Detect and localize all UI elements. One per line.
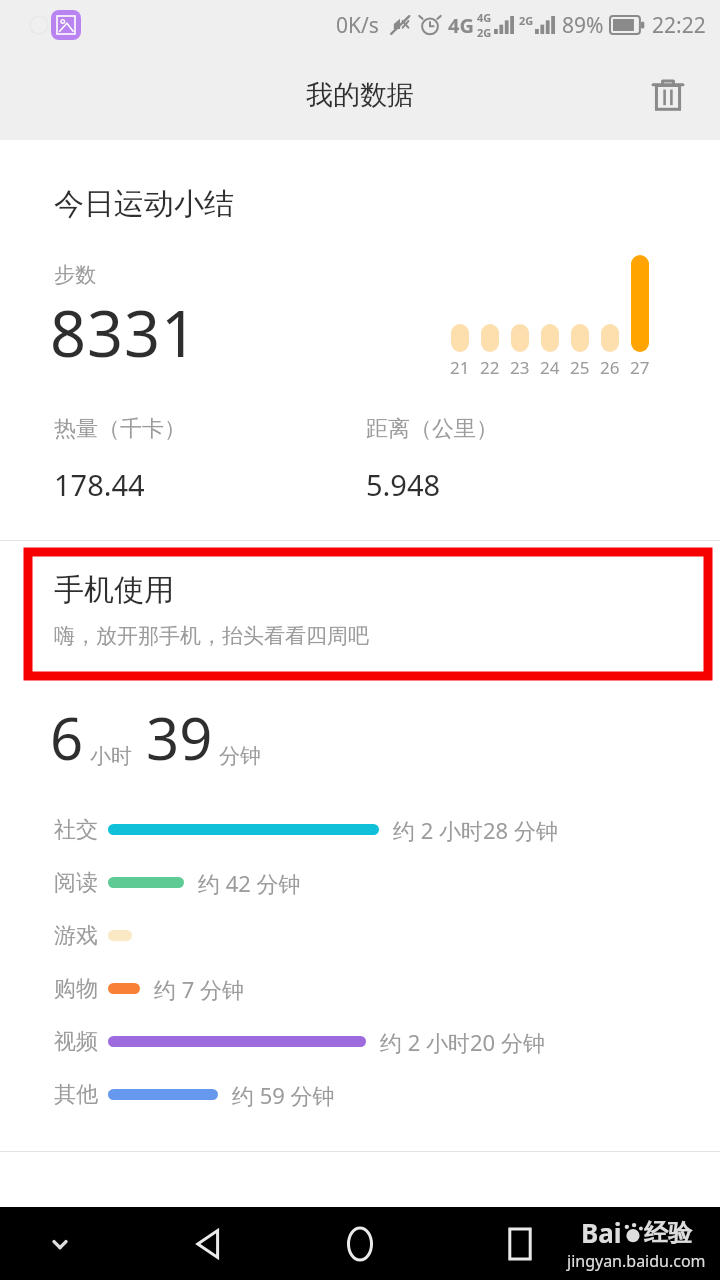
staticText: 嗨，放开那手机，抬头看看四周吧 xyxy=(54,623,369,649)
staticText: 热量（千卡） xyxy=(54,415,186,443)
staticText: 27 xyxy=(630,356,650,379)
button[interactable]: 手机使用 xyxy=(54,571,369,649)
staticText: 24 xyxy=(540,356,560,379)
staticText: 游戏 xyxy=(54,922,98,950)
button[interactable]: Recents xyxy=(490,1214,550,1274)
staticText: 8331 xyxy=(50,290,199,376)
staticText: 阅读 xyxy=(54,869,98,897)
staticText: 2G xyxy=(477,25,492,40)
staticText: 购物 xyxy=(54,975,98,1003)
button[interactable]: 社交 xyxy=(0,803,720,856)
button[interactable]: Hide xyxy=(36,1220,84,1268)
staticText: 约 7 分钟 xyxy=(154,974,245,1004)
button[interactable]: Delete xyxy=(640,67,696,123)
staticText: 社交 xyxy=(54,816,98,844)
staticText: 距离（公里） xyxy=(366,415,498,443)
staticText: 21 xyxy=(450,356,470,379)
staticText: 分钟 xyxy=(219,743,261,769)
button[interactable]: 今日运动小结 xyxy=(0,140,720,540)
staticText: 步数 xyxy=(54,262,96,288)
staticText: Bai xyxy=(581,1215,622,1250)
staticText: 6 xyxy=(50,698,84,777)
staticText: 约 2 小时28 分钟 xyxy=(393,815,558,845)
staticText: 约 59 分钟 xyxy=(232,1080,335,1110)
staticText: 小时 xyxy=(90,743,132,769)
staticText: 2G xyxy=(519,13,534,28)
staticText: 0K/s xyxy=(336,11,379,40)
button[interactable]: 其他 xyxy=(0,1068,720,1121)
staticText: 26 xyxy=(600,356,620,379)
staticText: jingyan.baidu.com xyxy=(567,1250,706,1272)
staticText: 手机使用 xyxy=(54,571,174,609)
staticText: 5.948 xyxy=(366,465,441,504)
staticText: 39 xyxy=(146,698,213,777)
staticText: 22 xyxy=(480,356,500,379)
button[interactable]: 游戏 xyxy=(0,909,720,962)
staticText: 89% xyxy=(562,11,604,40)
staticText: 视频 xyxy=(54,1028,98,1056)
staticText: 23 xyxy=(510,356,530,379)
staticText: 今日运动小结 xyxy=(54,185,234,223)
staticText: 我的数据 xyxy=(306,78,414,112)
staticText: 约 2 小时20 分钟 xyxy=(380,1027,545,1057)
staticText: 经验 xyxy=(644,1218,692,1248)
staticText: 4G xyxy=(477,10,492,25)
button[interactable]: 购物 xyxy=(0,962,720,1015)
staticText: 其他 xyxy=(54,1081,98,1109)
staticText: 25 xyxy=(570,356,590,379)
staticText: 4G xyxy=(448,12,474,39)
button[interactable]: 视频 xyxy=(0,1015,720,1068)
button[interactable]: 阅读 xyxy=(0,856,720,909)
button[interactable]: Home xyxy=(330,1214,390,1274)
staticText: 22:22 xyxy=(652,11,706,40)
staticText: 约 42 分钟 xyxy=(198,868,301,898)
button[interactable]: Back xyxy=(178,1214,238,1274)
staticText: 178.44 xyxy=(54,465,145,504)
